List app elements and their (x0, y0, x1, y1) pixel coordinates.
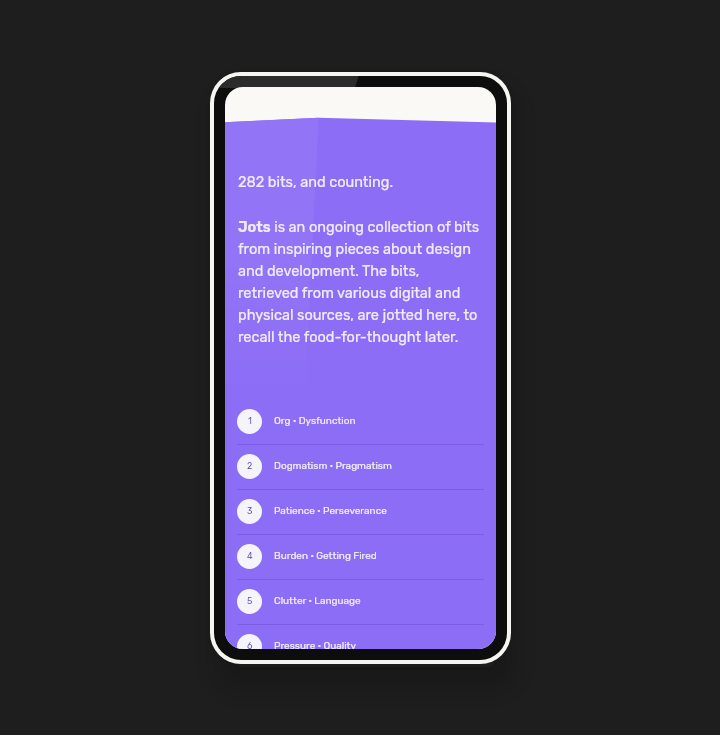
button[interactable]: 6 (225, 625, 496, 649)
staticText: Dogmatism · Pragmatism (274, 460, 392, 472)
button[interactable]: 1 (225, 400, 496, 445)
staticText: 5 (247, 596, 253, 607)
staticText: 6 (247, 641, 253, 649)
staticText: Pressure · Quality (274, 640, 357, 649)
staticText: 1 (248, 416, 252, 427)
staticText: 3 (247, 506, 253, 517)
staticText: Jots is an ongoing collection of bits fr… (238, 215, 481, 347)
staticText: 282 bits, and counting. (238, 172, 394, 191)
staticText: Clutter · Language (274, 595, 361, 607)
staticText: Org · Dysfunction (274, 415, 356, 427)
button[interactable]: 2 (225, 445, 496, 490)
button[interactable]: 3 (225, 490, 496, 535)
staticText: Patience · Perseverance (274, 505, 387, 517)
staticText: Burden · Getting Fired (274, 550, 377, 562)
button[interactable]: 5 (225, 580, 496, 625)
button[interactable]: 4 (225, 535, 496, 580)
staticText: 2 (247, 461, 253, 472)
staticText: 4 (247, 551, 253, 562)
